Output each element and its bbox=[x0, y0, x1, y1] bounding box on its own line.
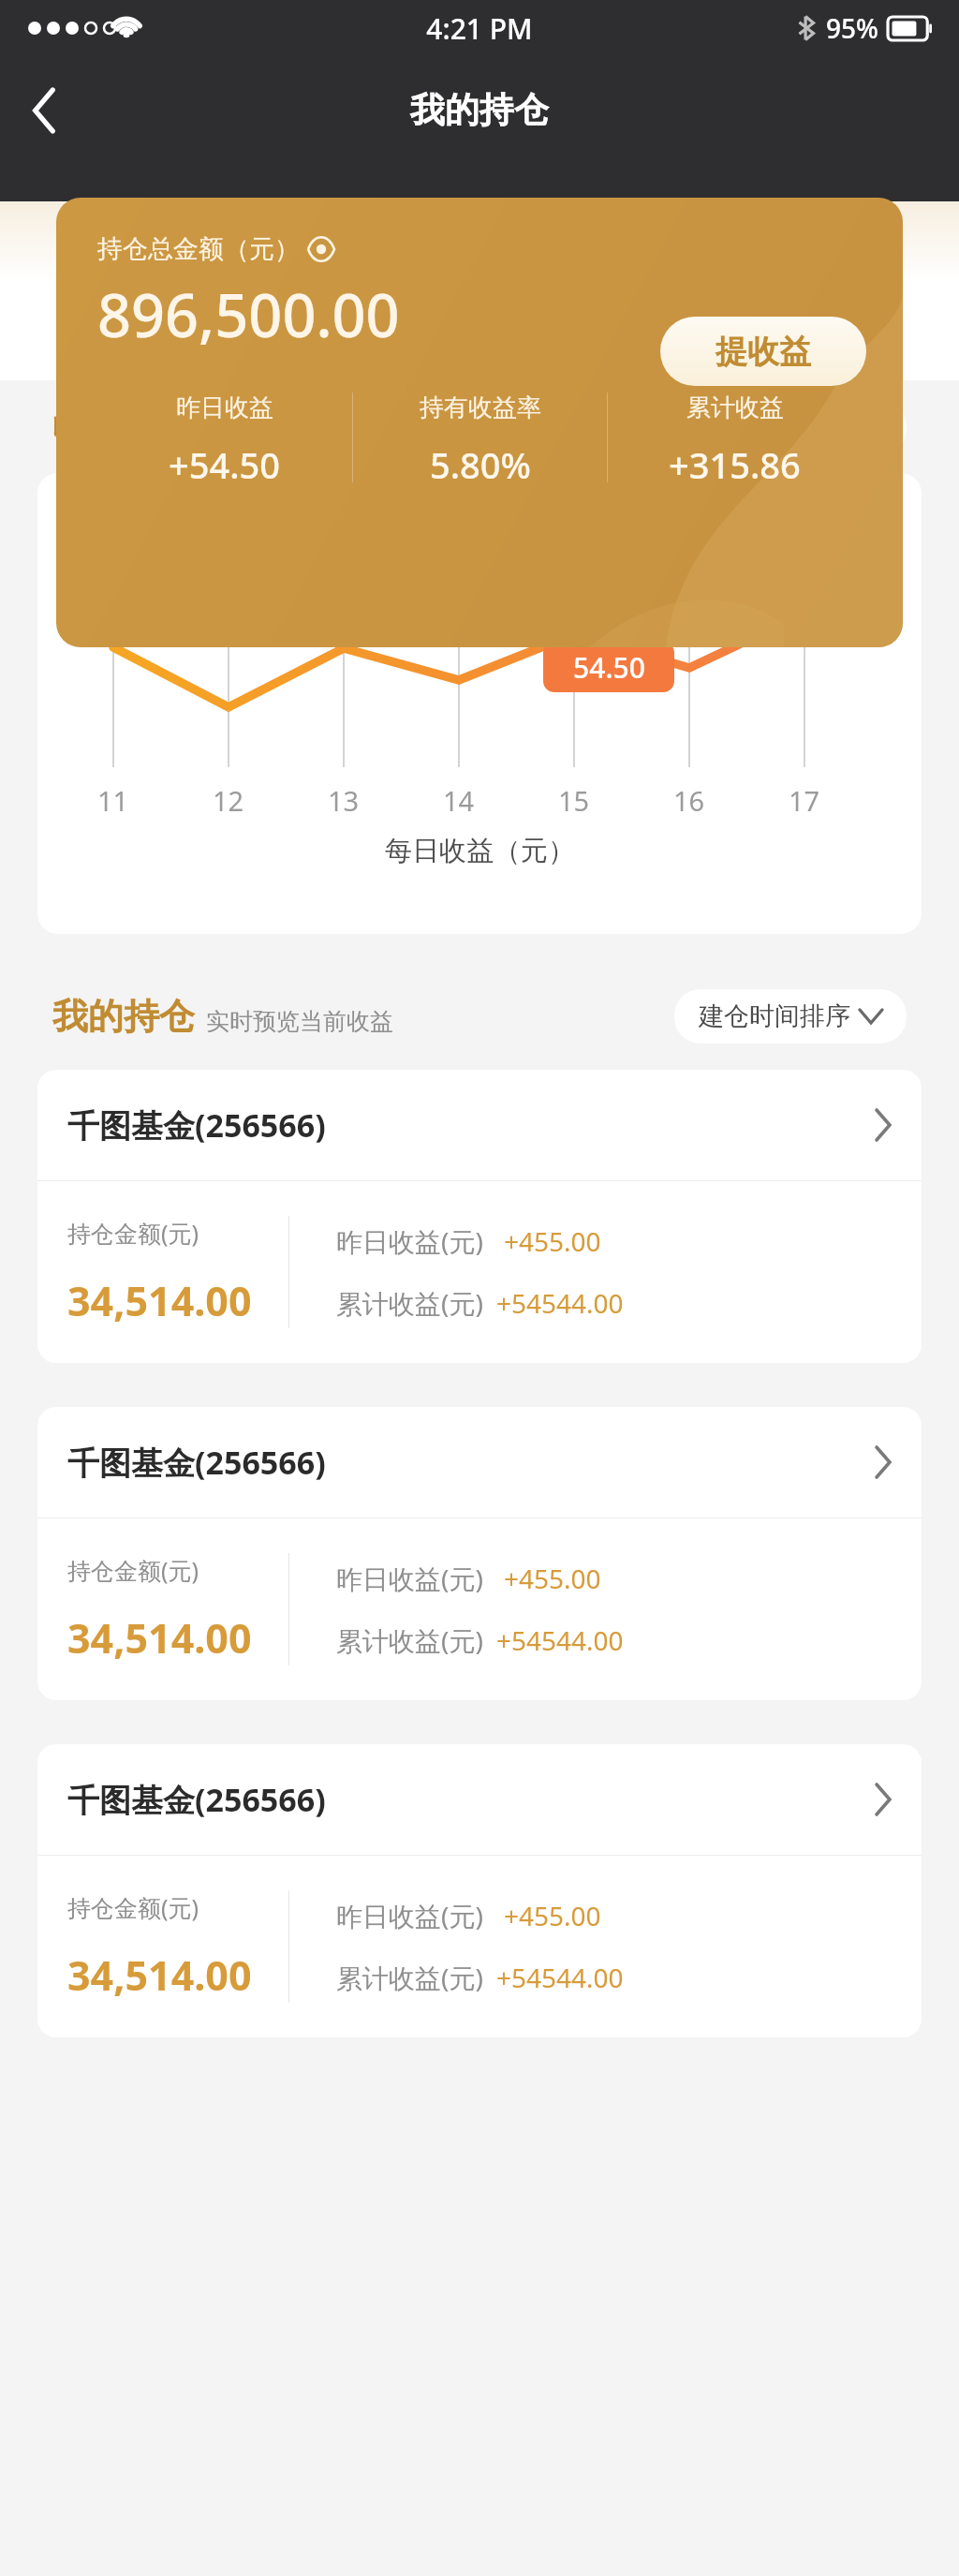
button[interactable]: 千图基金(256566) bbox=[37, 1407, 922, 1700]
button[interactable]: 千图基金(256566) bbox=[37, 1070, 922, 1363]
staticText: 11 bbox=[97, 782, 129, 819]
staticText: 收益预览 bbox=[52, 406, 195, 451]
staticText: 实时预览当前收益 bbox=[206, 1007, 393, 1036]
staticText: 实时预览当前收益 bbox=[206, 419, 393, 448]
button[interactable]: Back bbox=[9, 75, 81, 146]
button[interactable]: 建仓时间排序 bbox=[674, 989, 907, 1044]
staticText: 持有收益率 bbox=[420, 392, 541, 423]
staticText: +54.50 bbox=[169, 440, 281, 489]
staticText: +455.00 bbox=[504, 1898, 601, 1933]
staticText: 千图基金(256566) bbox=[67, 1103, 326, 1147]
staticText: 34,514.00 bbox=[67, 1947, 252, 2003]
staticText: 34,514.00 bbox=[67, 1273, 252, 1328]
staticText: 累计收益 bbox=[686, 392, 784, 423]
button[interactable]: 每日收益（周） bbox=[649, 401, 907, 455]
staticText: 34,514.00 bbox=[67, 1610, 252, 1666]
staticText: 5.80% bbox=[430, 440, 531, 489]
staticText: 每日收益（周） bbox=[673, 412, 850, 444]
staticText: 昨日收益(元) bbox=[336, 1898, 483, 1933]
staticText: 17 bbox=[789, 782, 820, 819]
staticText: 13 bbox=[328, 782, 360, 819]
staticText: 提收益 bbox=[716, 332, 811, 372]
staticText: +455.00 bbox=[504, 1223, 601, 1259]
staticText: 16 bbox=[673, 782, 705, 819]
staticText: 昨日收益 bbox=[176, 392, 273, 423]
button[interactable]: 持仓总金额（元） bbox=[56, 198, 903, 647]
staticText: +315.86 bbox=[669, 440, 801, 489]
staticText: 95% bbox=[826, 10, 878, 46]
staticText: +54544.00 bbox=[496, 1285, 624, 1321]
staticText: 1000.00 bbox=[230, 331, 325, 365]
button[interactable]: 提收益 bbox=[660, 317, 866, 386]
staticText: 您有 bbox=[180, 333, 230, 364]
staticText: +455.00 bbox=[504, 1561, 601, 1596]
staticText: 千图基金(256566) bbox=[67, 1778, 326, 1821]
staticText: 15 bbox=[558, 782, 590, 819]
staticText: 元购买在途，购买成功后会显示在持仓中 bbox=[325, 333, 780, 364]
staticText: 持仓金额(元) bbox=[67, 1891, 199, 1923]
staticText: +54544.00 bbox=[496, 1622, 624, 1658]
staticText: 持仓金额(元) bbox=[67, 1554, 199, 1586]
staticText: +54544.00 bbox=[496, 1960, 624, 1995]
staticText: 54.50 bbox=[573, 648, 645, 687]
button[interactable]: Toggle visibility bbox=[305, 233, 337, 265]
staticText: 896,500.00 bbox=[97, 274, 400, 355]
staticText: 昨日收益(元) bbox=[336, 1561, 483, 1596]
staticText: 千图基金(256566) bbox=[67, 1441, 326, 1484]
button[interactable]: 千图基金(256566) bbox=[37, 1744, 922, 2037]
staticText: 我的持仓 bbox=[52, 994, 195, 1039]
staticText: 建仓时间排序 bbox=[699, 1000, 850, 1032]
staticText: 4:21 PM bbox=[426, 9, 533, 48]
staticText: 每日收益（元） bbox=[385, 834, 575, 868]
staticText: 14 bbox=[443, 782, 475, 819]
staticText: 12 bbox=[213, 782, 244, 819]
staticText: 昨日收益(元) bbox=[336, 1223, 483, 1259]
staticText: 累计收益(元) bbox=[336, 1960, 483, 1995]
staticText: 持仓总金额（元） bbox=[97, 233, 300, 265]
staticText: 累计收益(元) bbox=[336, 1622, 483, 1658]
staticText: 累计收益(元) bbox=[336, 1285, 483, 1321]
staticText: 持仓金额(元) bbox=[67, 1217, 199, 1249]
staticText: 我的持仓 bbox=[410, 88, 549, 132]
